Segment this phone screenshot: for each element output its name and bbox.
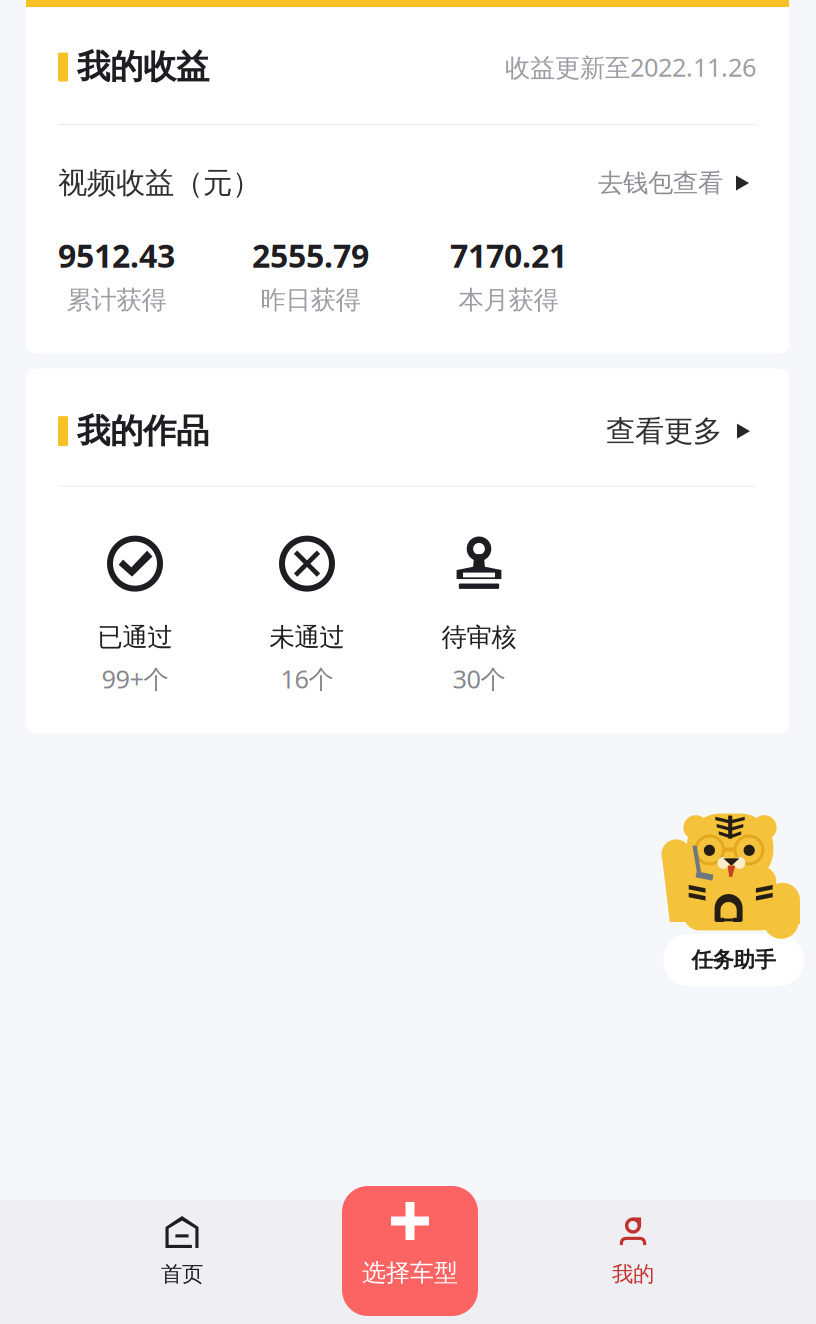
- staticText: 2555.79: [252, 234, 369, 276]
- staticText: 选择车型: [362, 1258, 458, 1287]
- staticText: 我的作品: [77, 411, 209, 452]
- staticText: 本月获得: [458, 284, 558, 316]
- staticText: 7170.21: [450, 234, 567, 276]
- staticText: 待审核: [441, 622, 516, 653]
- button[interactable]: 已通过: [49, 536, 221, 695]
- staticText: 收益更新至2022.11.26: [505, 50, 756, 84]
- staticText: 任务助手: [691, 947, 775, 973]
- button[interactable]: 查看更多: [606, 413, 750, 449]
- staticText: 16个: [280, 662, 333, 695]
- staticText: 已通过: [97, 622, 172, 653]
- button[interactable]: 未通过: [221, 536, 393, 695]
- button[interactable]: 首页: [82, 1200, 282, 1324]
- staticText: 视频收益（元）: [58, 165, 261, 201]
- button[interactable]: 待审核: [393, 536, 565, 695]
- staticText: 累计获得: [66, 284, 166, 316]
- staticText: 99+个: [101, 662, 168, 695]
- staticText: 我的收益: [77, 46, 209, 87]
- button[interactable]: 我的: [533, 1200, 733, 1324]
- staticText: 查看更多: [606, 413, 722, 449]
- staticText: 未通过: [269, 622, 344, 653]
- staticText: 昨日获得: [260, 284, 360, 316]
- staticText: 首页: [161, 1261, 203, 1287]
- staticText: 9512.43: [58, 234, 175, 276]
- button[interactable]: 任务助手: [660, 810, 805, 985]
- staticText: 30个: [452, 662, 505, 695]
- button[interactable]: 去钱包查看: [598, 167, 749, 199]
- staticText: 去钱包查看: [598, 167, 723, 199]
- staticText: 我的: [612, 1261, 654, 1287]
- button[interactable]: 选择车型: [342, 1186, 478, 1316]
